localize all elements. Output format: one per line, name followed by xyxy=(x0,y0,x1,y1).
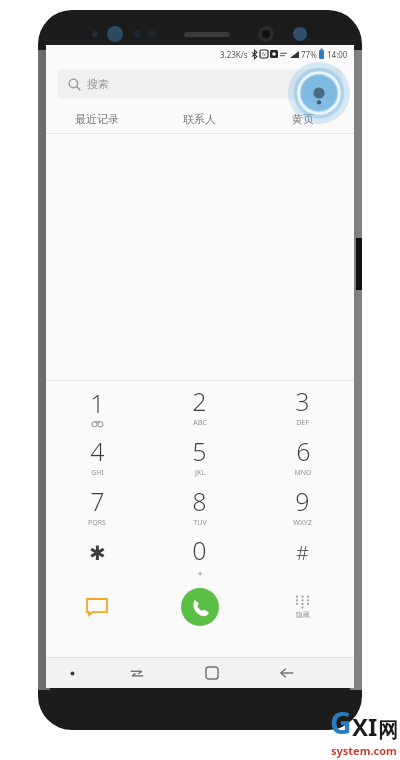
button[interactable]: 3 xyxy=(251,381,354,431)
staticText: N xyxy=(262,51,266,58)
staticText: 搜索 xyxy=(87,77,109,91)
staticText: # xyxy=(296,539,309,566)
staticText: 6 xyxy=(296,434,311,468)
button[interactable]: Message xyxy=(46,581,148,633)
staticText: 5 xyxy=(192,434,207,468)
button[interactable]: Menu dot xyxy=(46,658,99,688)
button[interactable]: 0 xyxy=(148,531,251,581)
staticText: 1 xyxy=(90,386,105,420)
staticText: 3 xyxy=(295,384,310,418)
button[interactable]: 1 xyxy=(46,381,148,431)
button[interactable]: Touch indicator xyxy=(288,62,350,124)
staticText: JKL xyxy=(195,468,205,478)
staticText: WXYZ xyxy=(293,518,312,528)
button[interactable]: 6 xyxy=(251,431,354,481)
staticText: 0 xyxy=(192,533,207,567)
staticText: 77% xyxy=(301,49,317,60)
staticText: XI xyxy=(352,710,378,743)
staticText: 4 xyxy=(90,434,105,468)
button[interactable]: 联系人 xyxy=(148,105,251,133)
button[interactable]: Call xyxy=(148,581,251,633)
staticText: DEF xyxy=(296,418,309,428)
staticText: 网 xyxy=(378,718,398,743)
staticText: 3.23K/s xyxy=(220,49,248,60)
button[interactable]: Recents xyxy=(99,658,174,688)
button[interactable]: 黄页 xyxy=(251,105,354,133)
button[interactable]: 4 xyxy=(46,431,148,481)
staticText: GHI xyxy=(91,468,104,478)
button[interactable]: ✱ xyxy=(46,531,148,581)
staticText: system.com xyxy=(331,743,397,758)
staticText: 最近记录 xyxy=(75,112,119,126)
staticText: 7 xyxy=(90,484,105,518)
button[interactable]: # xyxy=(251,531,354,581)
staticText: G xyxy=(330,702,352,743)
button[interactable]: Hide keypad xyxy=(251,581,354,633)
staticText: 隐藏 xyxy=(296,610,310,619)
staticText: + xyxy=(197,567,203,579)
button[interactable]: 5 xyxy=(148,431,251,481)
button[interactable]: Home xyxy=(174,658,249,688)
button[interactable]: Back xyxy=(249,658,324,688)
staticText: MNO xyxy=(294,468,312,478)
button[interactable]: 搜索 xyxy=(58,69,342,99)
staticText: 联系人 xyxy=(183,112,216,126)
staticText: PQRS xyxy=(88,518,106,528)
button[interactable]: 9 xyxy=(251,481,354,531)
staticText: ABC xyxy=(193,418,207,428)
button[interactable]: 2 xyxy=(148,381,251,431)
staticText: 14:00 xyxy=(327,49,348,60)
button[interactable]: 最近记录 xyxy=(46,105,148,133)
staticText: 9 xyxy=(295,484,310,518)
staticText: 8 xyxy=(192,484,207,518)
staticText: 2 xyxy=(192,384,207,418)
staticText: ✱ xyxy=(89,541,106,564)
staticText: 黄页 xyxy=(292,112,314,126)
button[interactable]: 8 xyxy=(148,481,251,531)
staticText: TUV xyxy=(193,518,207,528)
button[interactable]: 7 xyxy=(46,481,148,531)
